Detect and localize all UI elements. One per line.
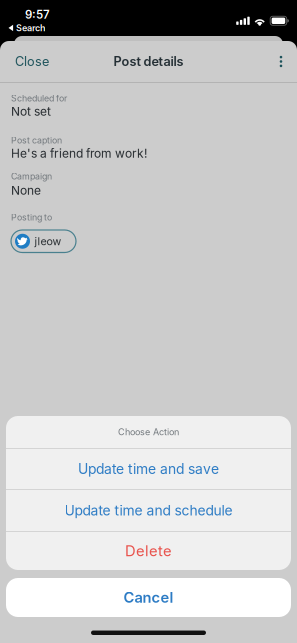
button[interactable]: Delete bbox=[6, 532, 291, 570]
staticText: Not set bbox=[11, 104, 51, 118]
staticText: Cancel bbox=[123, 589, 173, 606]
staticText: He's a friend from work! bbox=[11, 146, 147, 160]
button[interactable]: More options bbox=[266, 41, 297, 82]
staticText: Choose Action bbox=[118, 426, 179, 437]
staticText: Post details bbox=[113, 54, 183, 69]
staticText: 9:57 bbox=[25, 8, 50, 21]
staticText: Posting to bbox=[11, 212, 52, 223]
staticText: None bbox=[11, 183, 41, 197]
button[interactable]: Search bbox=[0, 22, 46, 33]
button[interactable]: Close bbox=[0, 41, 62, 82]
staticText: Update time and save bbox=[78, 461, 219, 477]
staticText: jleow bbox=[34, 235, 61, 248]
staticText: Close bbox=[15, 54, 49, 69]
staticText: Post caption bbox=[11, 135, 62, 146]
button[interactable]: Update time and save bbox=[6, 449, 291, 489]
staticText: Update time and schedule bbox=[64, 502, 232, 519]
button[interactable]: Cancel bbox=[0, 578, 297, 617]
staticText: Scheduled for bbox=[11, 93, 67, 104]
button[interactable]: jleow bbox=[11, 230, 76, 252]
staticText: Campaign bbox=[11, 171, 52, 182]
button[interactable]: Update time and schedule bbox=[6, 490, 291, 531]
staticText: Search bbox=[16, 22, 46, 33]
staticText: Delete bbox=[125, 542, 172, 560]
